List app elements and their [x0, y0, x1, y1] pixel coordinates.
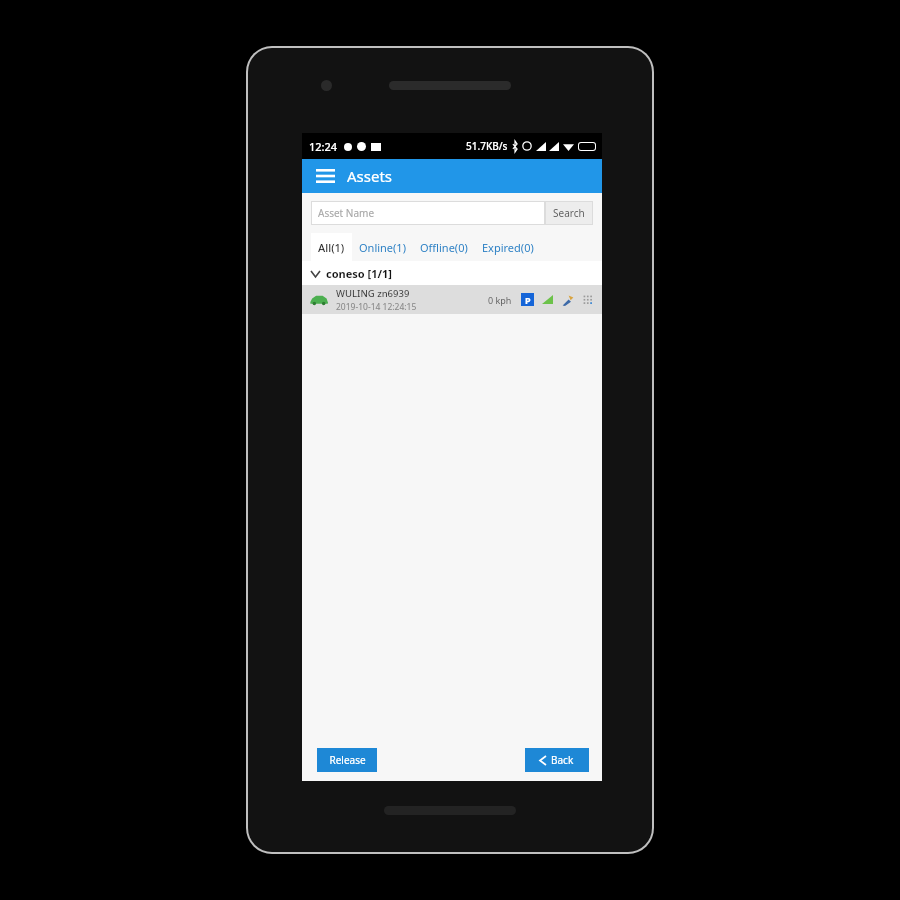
staticText: WULING zn6939	[336, 287, 410, 300]
staticText: Back	[551, 753, 574, 767]
button[interactable]: Online(1)	[352, 233, 413, 261]
staticText: P	[525, 294, 531, 306]
staticText: Asset Name	[318, 206, 375, 220]
staticText: Offline(0)	[420, 240, 468, 255]
button[interactable]: Asset Name	[311, 201, 545, 225]
staticText: Search	[553, 206, 585, 220]
button[interactable]: Open navigation menu	[314, 165, 336, 187]
staticText: Expired(0)	[482, 240, 534, 255]
staticText: 0 kph	[488, 294, 512, 306]
button[interactable]: Offline(0)	[413, 233, 475, 261]
button[interactable]: GPS satellite	[561, 293, 574, 306]
staticText: 51.7KB/s	[466, 139, 508, 153]
button[interactable]: Expired(0)	[475, 233, 541, 261]
button[interactable]: More options	[581, 293, 594, 306]
button[interactable]: WULING zn6939	[302, 285, 602, 314]
staticText: coneso [1/1]	[326, 266, 392, 281]
button[interactable]: Signal strength	[541, 293, 554, 306]
button[interactable]: coneso [1/1]	[302, 261, 602, 285]
button[interactable]: Parking status	[521, 293, 534, 306]
staticText: Release	[329, 753, 366, 767]
button[interactable]: Release	[317, 748, 377, 772]
button[interactable]: All(1)	[311, 233, 352, 261]
staticText: 2019-10-14 12:24:15	[336, 301, 417, 313]
staticText: 12:24	[309, 139, 338, 154]
staticText: Assets	[347, 166, 393, 186]
button[interactable]: Back	[525, 748, 589, 772]
staticText: Online(1)	[359, 240, 406, 255]
button[interactable]: Search	[545, 201, 593, 225]
staticText: All(1)	[318, 240, 345, 255]
